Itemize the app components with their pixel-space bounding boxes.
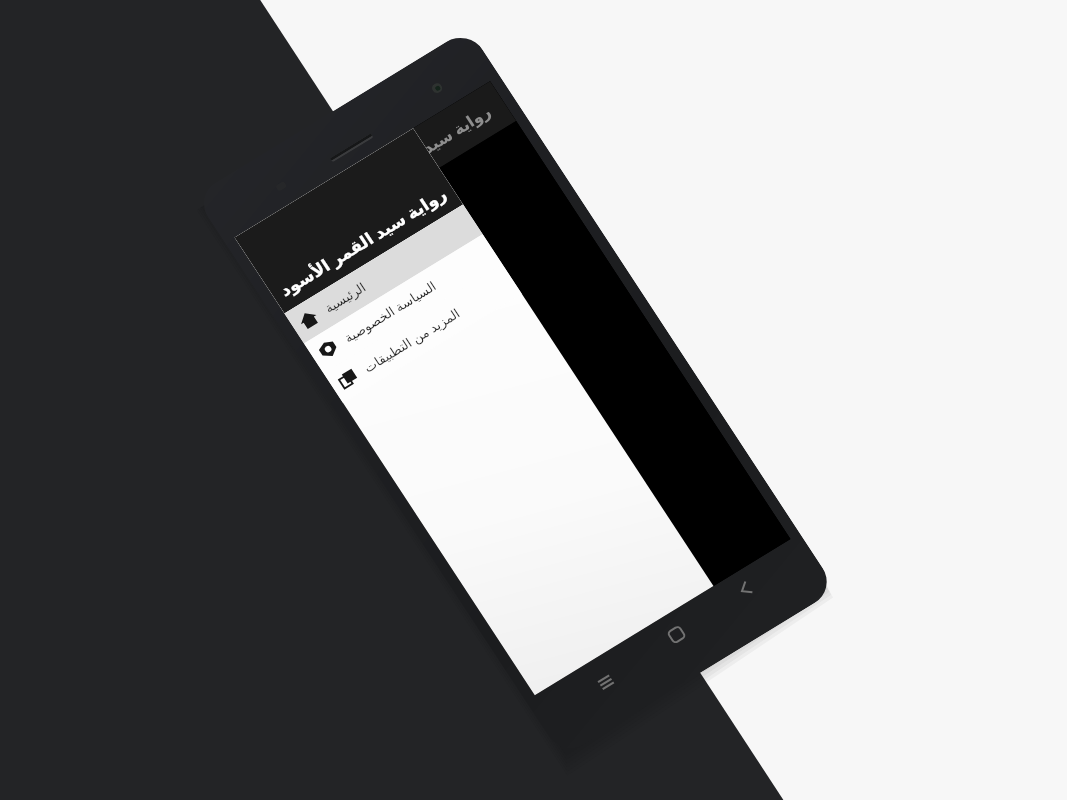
staticText: المزيد من التطبيقات — [359, 270, 511, 382]
button[interactable]: السياسة الخصوصية — [303, 227, 503, 380]
button[interactable]: Back — [722, 566, 768, 611]
staticText: الرئيسية — [322, 212, 471, 321]
staticText: السياسة الخصوصية — [340, 240, 491, 352]
staticText: رواية سيد القمر الأسود — [270, 176, 451, 311]
staticText: رواية سيد القمر الأسود — [329, 94, 496, 219]
button[interactable]: الرئيسية — [283, 197, 484, 350]
button[interactable]: المزيد من التطبيقات — [322, 257, 523, 410]
button[interactable]: Recent apps — [582, 659, 629, 705]
button[interactable]: Home — [652, 612, 699, 657]
